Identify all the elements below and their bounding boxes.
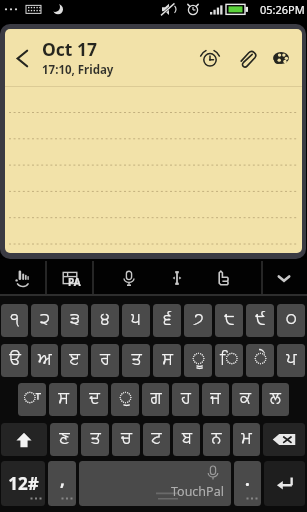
staticText: ੪: [100, 311, 110, 327]
button[interactable]: Space: [79, 461, 231, 506]
button[interactable]: ਤ: [122, 344, 150, 377]
button[interactable]: ਿ: [215, 344, 243, 377]
button[interactable]: ੯: [246, 304, 274, 337]
button[interactable]: ੬: [153, 304, 181, 337]
button[interactable]: gesture: [200, 259, 244, 296]
button[interactable]: ੁ: [111, 383, 139, 416]
staticText: ਮ: [241, 430, 252, 446]
staticText: ਲ: [270, 390, 281, 406]
button[interactable]: ੪: [91, 304, 119, 337]
button[interactable]: ਣ: [50, 423, 78, 456]
button[interactable]: ਾ: [18, 383, 46, 416]
button[interactable]: Back: [9, 45, 35, 71]
staticText: ਬ: [182, 430, 192, 446]
button[interactable]: ,: [48, 461, 76, 506]
button[interactable]: down: [262, 259, 306, 296]
staticText: ਦ: [89, 390, 100, 406]
staticText: ਸ: [162, 351, 173, 367]
staticText: ੭: [193, 311, 204, 327]
staticText: ੬: [163, 311, 172, 327]
staticText: ,: [60, 468, 65, 491]
staticText: ਤ: [131, 351, 142, 367]
staticText: 12#: [8, 472, 39, 495]
staticText: ੯: [255, 311, 266, 327]
button[interactable]: ਸ: [153, 344, 181, 377]
staticText: ਅ: [38, 351, 52, 367]
button[interactable]: lang: [48, 259, 92, 296]
button[interactable]: ੭: [184, 304, 212, 337]
button[interactable]: Change colour: [269, 46, 293, 70]
button[interactable]: ਟ: [143, 423, 170, 456]
staticText: ਸ: [58, 390, 69, 406]
staticText: ਕ: [240, 390, 251, 406]
staticText: ੫: [131, 311, 141, 327]
staticText: .: [245, 468, 250, 491]
staticText: ਣ: [59, 430, 70, 446]
staticText: TouchPal: [171, 483, 224, 500]
staticText: ੩: [70, 311, 80, 327]
button[interactable]: ੩: [61, 304, 88, 337]
button[interactable]: Shift: [1, 423, 47, 456]
staticText: ਰ: [100, 351, 110, 367]
button[interactable]: Enter: [264, 461, 305, 506]
button[interactable]: ਗ: [142, 383, 169, 416]
button[interactable]: ੮: [215, 304, 243, 337]
button[interactable]: ੧: [1, 304, 28, 337]
staticText: ਟ: [151, 430, 162, 446]
button[interactable]: ੨: [31, 304, 58, 337]
button[interactable]: ਸ: [49, 383, 77, 416]
button[interactable]: ਲ: [262, 383, 289, 416]
button[interactable]: ੂ: [184, 344, 212, 377]
staticText: ੲ: [69, 351, 80, 367]
button[interactable]: ਹ: [172, 383, 199, 416]
staticText: 05:26PM: [260, 2, 305, 17]
button[interactable]: ਅ: [31, 344, 58, 377]
button[interactable]: ਦ: [80, 383, 108, 416]
staticText: ੇ: [254, 351, 267, 367]
button[interactable]: cursor: [155, 259, 199, 296]
staticText: ੁ: [119, 390, 132, 406]
staticText: ਿ: [220, 351, 238, 367]
staticText: 17:10, Friday: [42, 62, 114, 78]
button[interactable]: hand: [1, 259, 45, 296]
button[interactable]: Reminder: [198, 46, 222, 70]
button[interactable]: ਤ: [81, 423, 109, 456]
staticText: ਪ: [286, 351, 297, 367]
staticText: ੂ: [192, 351, 205, 367]
button[interactable]: ਬ: [173, 423, 200, 456]
button[interactable]: 12#: [1, 461, 45, 506]
staticText: PA: [68, 275, 81, 289]
button[interactable]: ੦: [277, 304, 305, 337]
button[interactable]: ੫: [122, 304, 150, 337]
staticText: ਾ: [23, 390, 41, 406]
button[interactable]: ੲ: [61, 344, 88, 377]
button[interactable]: ਪ: [277, 344, 305, 377]
staticText: ੦: [286, 311, 297, 327]
staticText: ੨: [40, 311, 50, 327]
button[interactable]: ਚ: [112, 423, 140, 456]
button[interactable]: mic: [107, 259, 151, 296]
staticText: ੧: [10, 311, 19, 327]
staticText: ੳ: [9, 351, 21, 367]
staticText: ਹ: [181, 390, 191, 406]
staticText: ਨ: [211, 430, 222, 446]
staticText: ਚ: [121, 430, 132, 446]
button[interactable]: ੳ: [1, 344, 28, 377]
staticText: ਜ: [210, 390, 221, 406]
staticText: ਤ: [90, 430, 101, 446]
button[interactable]: Attach file: [234, 46, 258, 70]
button[interactable]: ਕ: [232, 383, 259, 416]
button[interactable]: ਰ: [91, 344, 119, 377]
staticText: ੮: [224, 311, 235, 327]
button[interactable]: ਮ: [233, 423, 260, 456]
button[interactable]: ੇ: [246, 344, 274, 377]
button[interactable]: ਨ: [203, 423, 230, 456]
button[interactable]: .: [234, 461, 261, 506]
button[interactable]: Backspace: [263, 423, 305, 456]
button[interactable]: ਜ: [202, 383, 229, 416]
staticText: Oct 17: [42, 37, 98, 61]
staticText: ਗ: [150, 390, 162, 406]
